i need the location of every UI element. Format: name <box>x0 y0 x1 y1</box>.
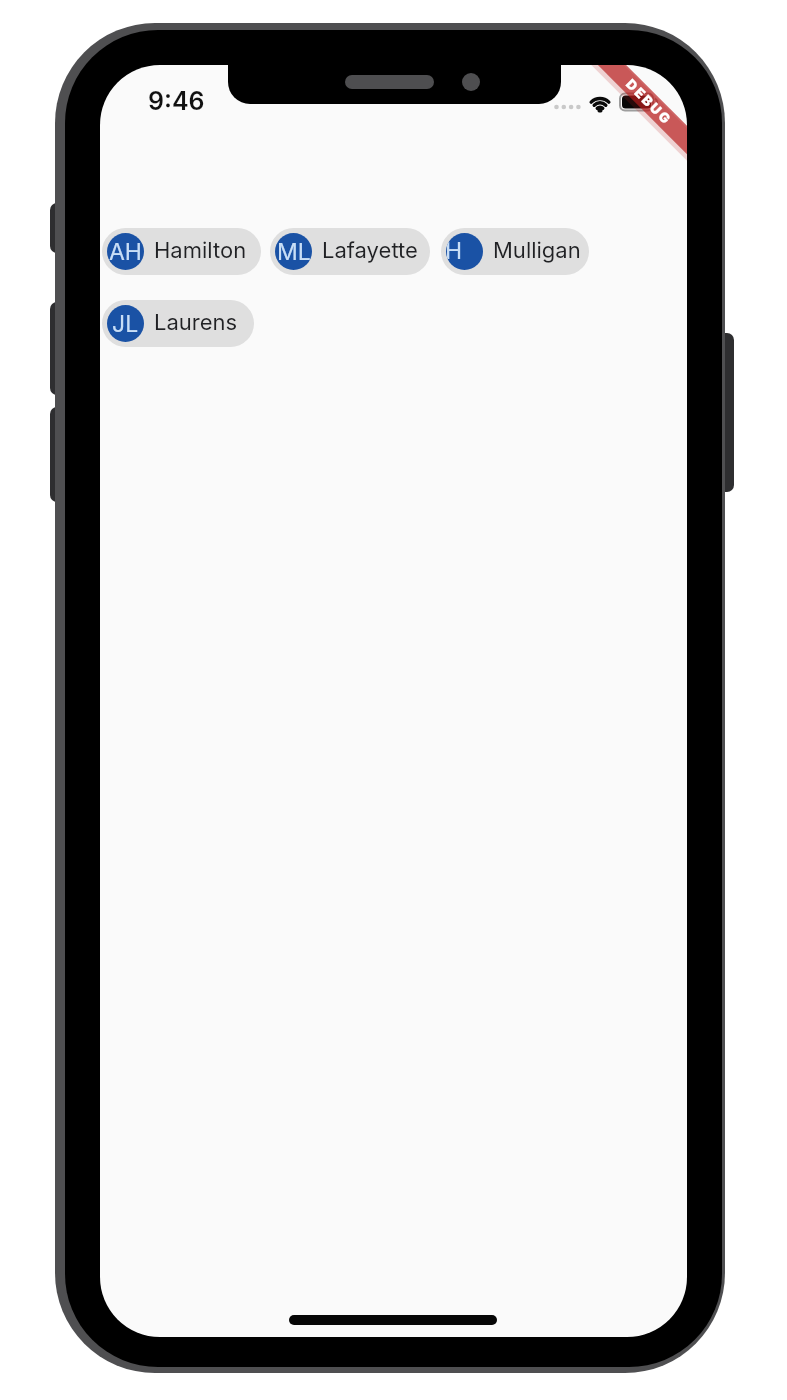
staticText: ML <box>277 238 311 266</box>
staticText: H <box>446 237 463 265</box>
staticText: DEBUG <box>623 76 675 128</box>
button[interactable]: ML <box>270 228 430 275</box>
staticText: Laurens <box>154 309 238 336</box>
button[interactable]: JL <box>102 300 254 347</box>
staticText: 9:46 <box>148 86 205 116</box>
staticText: Hamilton <box>154 237 247 264</box>
staticText: Lafayette <box>322 237 418 264</box>
staticText: JL <box>112 310 139 338</box>
button[interactable]: H <box>441 228 589 275</box>
staticText: AH <box>109 238 142 266</box>
staticText: Mulligan <box>493 237 581 264</box>
button[interactable]: AH <box>102 228 261 275</box>
